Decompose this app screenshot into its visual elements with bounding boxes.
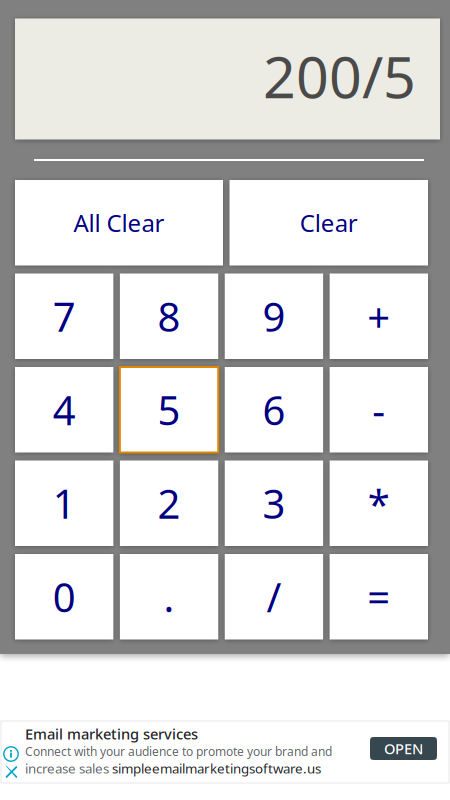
staticText: . [164, 570, 175, 623]
button[interactable]: - [330, 367, 428, 452]
button[interactable]: OPEN [370, 737, 437, 760]
staticText: 1 [53, 477, 76, 530]
button[interactable]: Clear [229, 180, 428, 265]
staticText: 5 [158, 383, 181, 436]
button[interactable]: Close ad [3, 764, 19, 780]
button[interactable]: 4 [15, 367, 113, 452]
staticText: 4 [53, 383, 76, 436]
button[interactable]: 7 [15, 273, 113, 359]
staticText: Email marketing services [25, 724, 198, 743]
staticText: 9 [262, 290, 285, 343]
button[interactable]: . [120, 554, 218, 639]
staticText: Connect with your audience to promote yo… [25, 743, 332, 759]
button[interactable]: 9 [225, 273, 323, 359]
staticText: 3 [262, 477, 285, 530]
button[interactable]: = [330, 554, 428, 639]
staticText: OPEN [384, 739, 423, 758]
staticText: = [367, 570, 390, 623]
button[interactable]: 5 [120, 367, 218, 452]
staticText: 200/5 [263, 38, 416, 114]
staticText: - [372, 383, 385, 436]
button[interactable]: 2 [120, 460, 218, 546]
button[interactable]: 8 [120, 273, 218, 359]
staticText: 0 [53, 570, 76, 623]
button[interactable]: Ad information [3, 746, 19, 762]
staticText: 7 [53, 290, 76, 343]
staticText: + [367, 290, 390, 343]
staticText: 8 [158, 290, 181, 343]
button[interactable]: 6 [225, 367, 323, 452]
staticText: * [368, 477, 390, 530]
staticText: Clear [300, 207, 358, 239]
button[interactable]: + [330, 273, 428, 359]
button[interactable]: / [225, 554, 323, 639]
button[interactable]: * [330, 460, 428, 546]
button[interactable]: 3 [225, 460, 323, 546]
button[interactable]: 0 [15, 554, 113, 639]
staticText: 2 [158, 477, 181, 530]
button[interactable]: All Clear [15, 180, 223, 265]
button[interactable]: 1 [15, 460, 113, 546]
staticText: increase sales [25, 759, 112, 777]
staticText: 6 [262, 383, 285, 436]
staticText: All Clear [73, 207, 164, 239]
staticText: simpleemailmarketingsoftware.us [112, 759, 321, 777]
staticText: / [266, 570, 281, 623]
